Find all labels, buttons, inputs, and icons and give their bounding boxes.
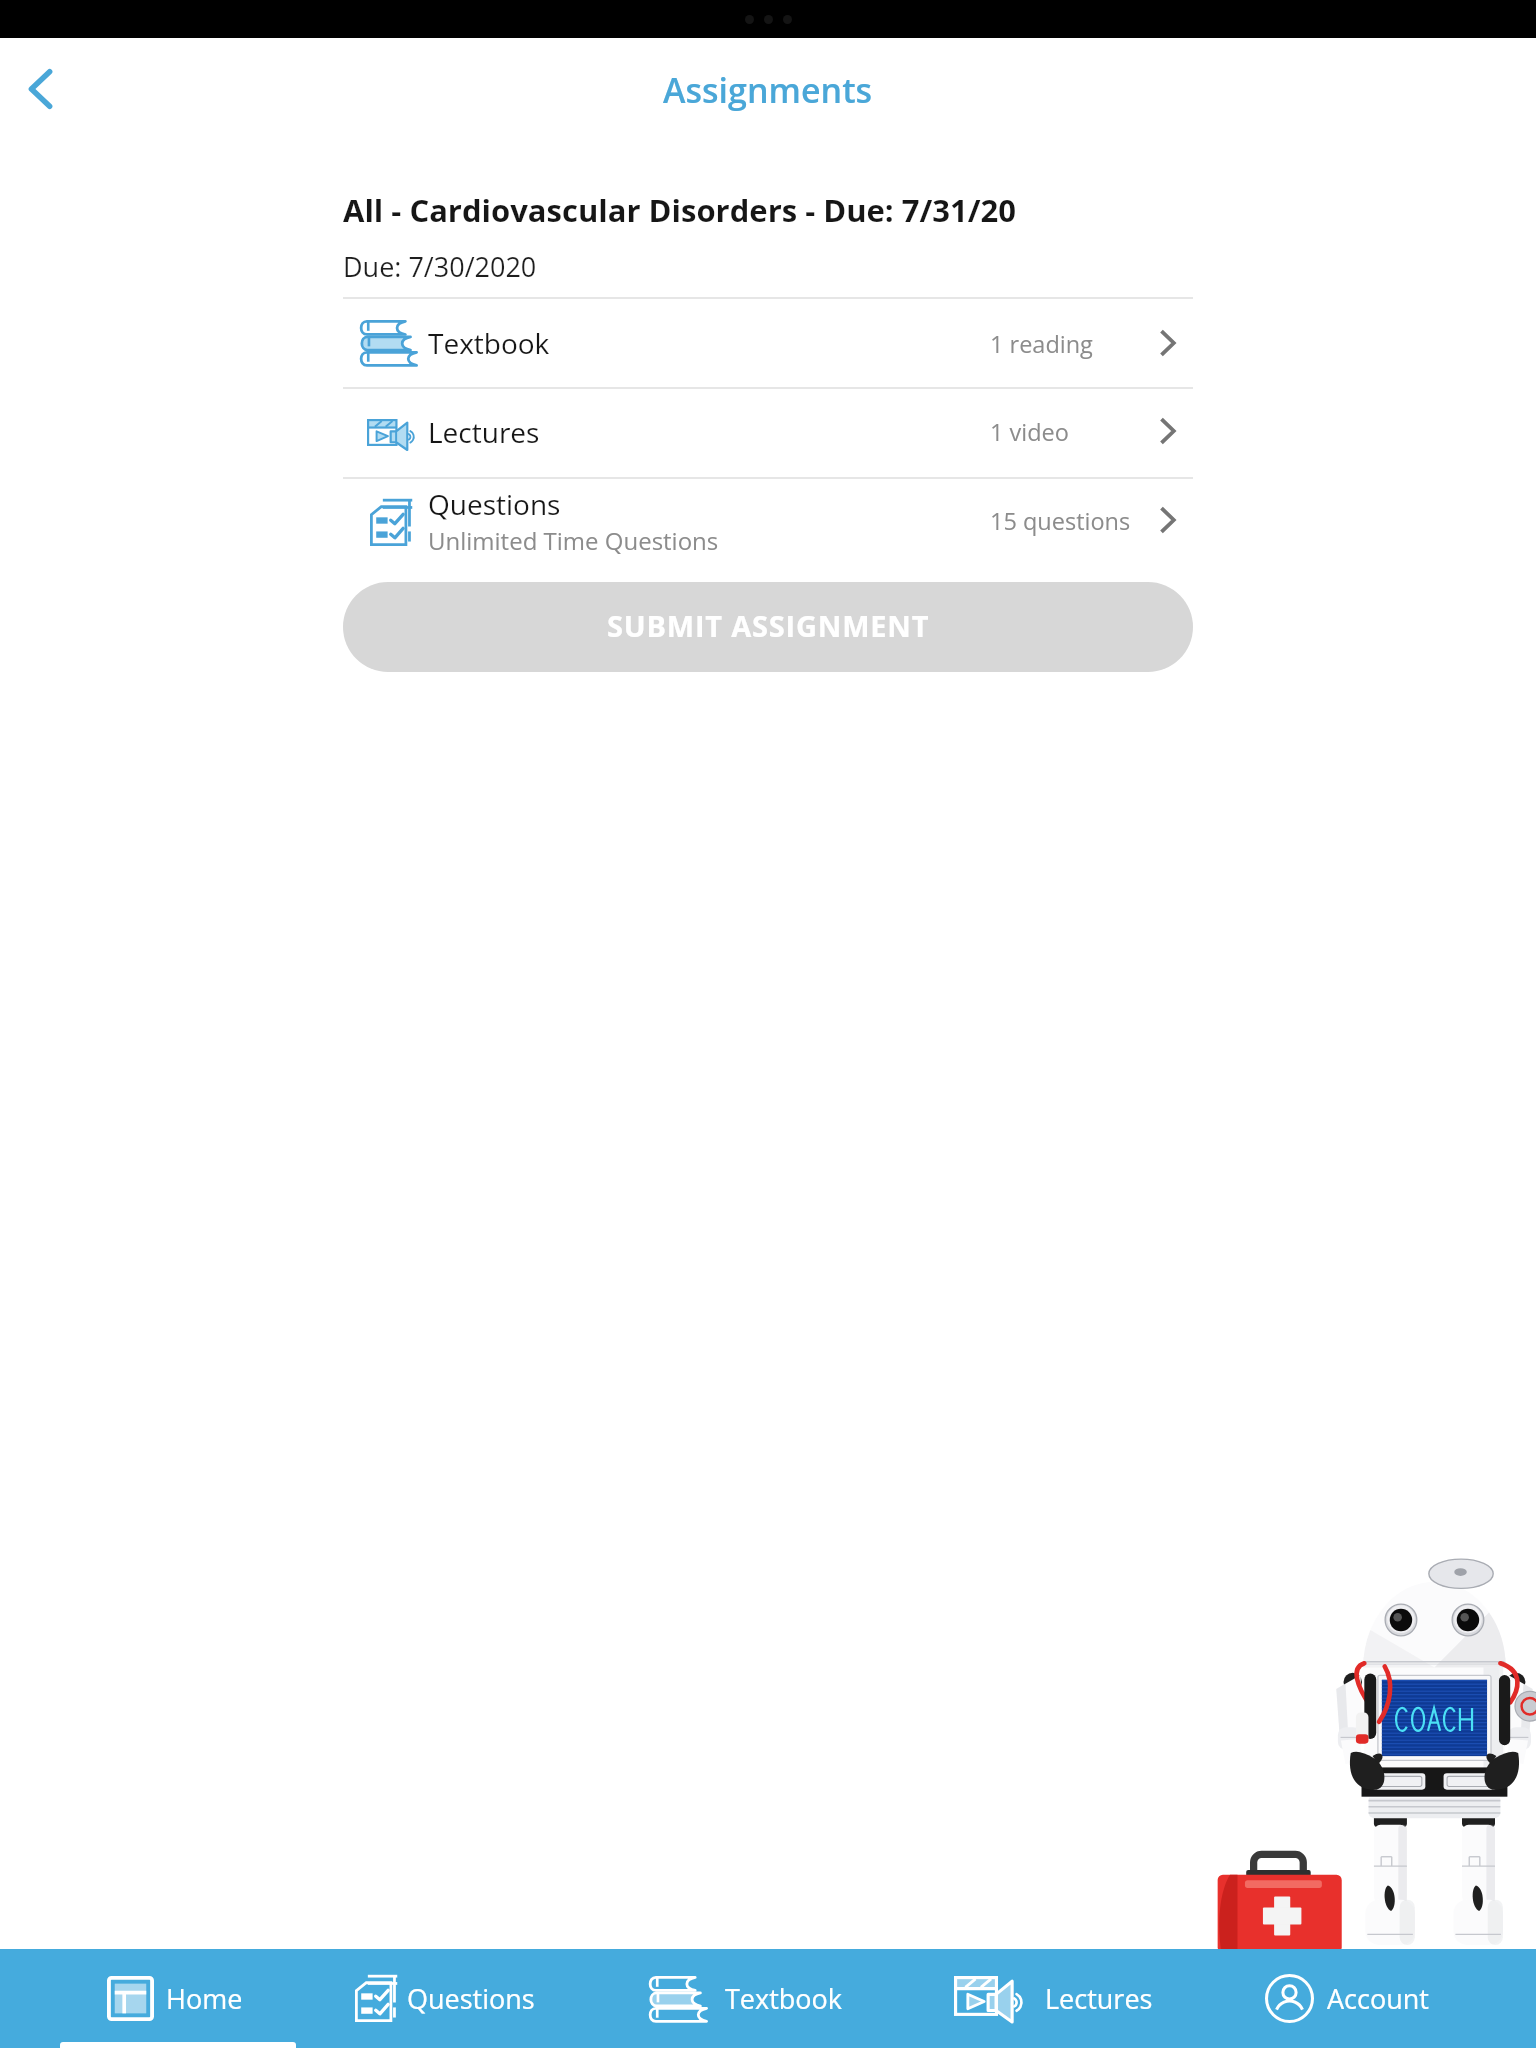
staticText: Questions: [407, 1980, 535, 2017]
staticText: Assignments: [663, 67, 873, 113]
staticText: Lectures: [1045, 1980, 1153, 2017]
staticText: 1 video: [990, 416, 1069, 448]
staticText: Due: 7/30/2020: [343, 248, 537, 285]
button[interactable]: Lectures: [343, 387, 1193, 477]
staticText: Textbook: [428, 324, 550, 362]
staticText: Unlimited Time Questions: [428, 524, 719, 557]
staticText: 1 reading: [990, 328, 1093, 360]
button[interactable]: Textbook: [648, 1949, 842, 2048]
staticText: Lectures: [428, 413, 540, 451]
staticText: Textbook: [725, 1980, 842, 2017]
staticText: SUBMIT ASSIGNMENT: [607, 606, 930, 645]
button[interactable]: SUBMIT ASSIGNMENT: [343, 582, 1193, 672]
button[interactable]: Account: [1265, 1949, 1429, 2048]
staticText: Home: [166, 1980, 243, 2017]
button[interactable]: Textbook: [343, 297, 1193, 387]
staticText: Account: [1327, 1980, 1429, 2017]
button[interactable]: Back: [6, 54, 76, 124]
staticText: Questions: [428, 485, 561, 523]
staticText: All - Cardiovascular Disorders - Due: 7/…: [343, 189, 1016, 231]
button[interactable]: Lectures: [954, 1949, 1153, 2048]
button[interactable]: Questions: [355, 1949, 535, 2048]
button[interactable]: Home: [107, 1949, 243, 2048]
staticText: 15 questions: [990, 505, 1131, 537]
button[interactable]: Questions: [343, 477, 1193, 577]
